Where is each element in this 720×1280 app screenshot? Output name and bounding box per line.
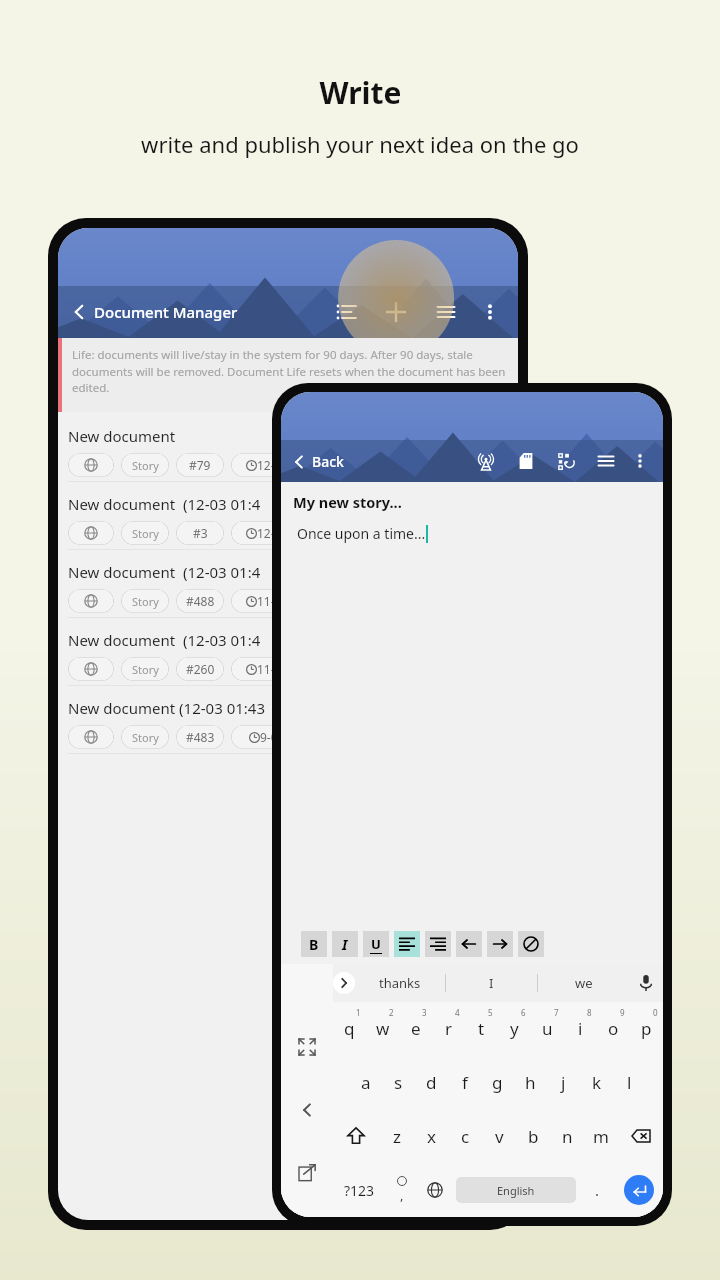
button[interactable]: 4 [432,1002,465,1055]
staticText: u [542,1017,553,1040]
button[interactable]: Enter [614,1163,663,1217]
button[interactable]: ?123 [333,1163,385,1217]
button[interactable]: Back [291,452,344,471]
button[interactable]: c [448,1109,482,1163]
button[interactable]: Menu [591,446,621,476]
button[interactable]: Save to card [511,446,541,476]
button[interactable]: New document [378,294,414,330]
button[interactable] [425,931,451,957]
button[interactable]: Shift [333,1109,379,1163]
button[interactable]: English [456,1177,576,1203]
button[interactable]: Document Manager [70,302,244,322]
staticText: U [371,935,381,953]
button[interactable]: b [516,1109,550,1163]
button[interactable]: 11-01 [231,657,303,681]
staticText: z [393,1125,401,1148]
staticText: thanks [379,974,421,992]
button[interactable]: j [547,1055,580,1109]
button[interactable] [68,521,114,545]
button[interactable]: Sort list [328,294,364,330]
button[interactable]: #260 [176,657,224,681]
button[interactable]: New document (12-03 01:43 [58,692,518,760]
button[interactable]: Floating keyboard [290,1155,324,1189]
staticText: d [426,1071,437,1094]
button[interactable]: Story [121,725,169,749]
button[interactable]: New document (12-03 01:4 [58,556,518,624]
button[interactable]: 9-07 [231,725,303,749]
button[interactable]: More options [627,448,653,474]
button[interactable]: thanks [355,964,445,1002]
button[interactable]: Resize keyboard [290,1030,324,1064]
button[interactable]: Emoji [385,1163,418,1217]
button[interactable]: Story [121,589,169,613]
button[interactable]: 1 [333,1002,366,1055]
button[interactable] [68,657,114,681]
button[interactable]: x [414,1109,448,1163]
staticText: Story [132,594,159,609]
button[interactable]: 0 [630,1002,663,1055]
button[interactable]: Publish [471,446,501,476]
staticText: e [411,1017,421,1040]
button[interactable]: Story [121,521,169,545]
button[interactable]: Change language [418,1163,452,1217]
button[interactable]: 11-01 [231,589,303,613]
button[interactable]: B [301,931,327,957]
button[interactable]: #483 [176,725,224,749]
button[interactable]: Move keyboard [290,1093,324,1127]
button[interactable]: v [482,1109,516,1163]
button[interactable]: Story [121,657,169,681]
button[interactable]: #488 [176,589,224,613]
button[interactable]: k [580,1055,613,1109]
button[interactable]: f [448,1055,481,1109]
button[interactable]: 7 [531,1002,564,1055]
button[interactable]: New document (12-03 01:4 [58,488,518,556]
button[interactable] [68,453,114,477]
staticText: 2 [389,1007,394,1018]
button[interactable]: U [363,931,389,957]
button[interactable]: More options [474,296,506,328]
button[interactable]: we [538,964,629,1002]
button[interactable]: 9 [597,1002,630,1055]
staticText: 4 [455,1007,460,1018]
button[interactable]: 8 [564,1002,597,1055]
button[interactable]: New document [58,420,518,488]
button[interactable]: #3 [176,521,224,545]
button[interactable] [518,931,544,957]
button[interactable]: Voice input [629,964,663,1002]
button[interactable]: Menu [428,294,464,330]
button[interactable]: New document (12-03 01:4 [58,624,518,692]
button[interactable]: I [446,964,537,1002]
button[interactable]: Backspace [618,1109,663,1163]
button[interactable]: z [379,1109,414,1163]
button[interactable]: n [550,1109,584,1163]
button[interactable] [394,931,420,957]
button[interactable]: 12-03 [231,521,303,545]
button[interactable]: m [584,1109,618,1163]
button[interactable]: 2 [366,1002,399,1055]
button[interactable]: #79 [176,453,224,477]
button[interactable]: Story [121,453,169,477]
button[interactable] [68,725,114,749]
button[interactable] [487,931,513,957]
button[interactable]: 12-03 [231,453,303,477]
button[interactable]: s [382,1055,415,1109]
button[interactable]: 3 [399,1002,432,1055]
button[interactable] [456,931,482,957]
staticText: 12-03 [257,525,289,541]
button[interactable]: l [613,1055,646,1109]
button[interactable]: h [514,1055,547,1109]
staticText: p [641,1017,652,1040]
staticText: I [489,974,494,992]
button[interactable]: Expand toolbar [333,972,355,994]
button[interactable]: 5 [465,1002,498,1055]
button[interactable]: a [349,1055,382,1109]
staticText: New document [68,426,176,446]
button[interactable]: d [415,1055,448,1109]
staticText: g [492,1071,503,1094]
button[interactable]: Revert [551,446,581,476]
button[interactable]: 6 [498,1002,531,1055]
button[interactable]: I [332,931,358,957]
button[interactable]: . [580,1163,614,1217]
button[interactable] [68,589,114,613]
button[interactable]: g [481,1055,514,1109]
